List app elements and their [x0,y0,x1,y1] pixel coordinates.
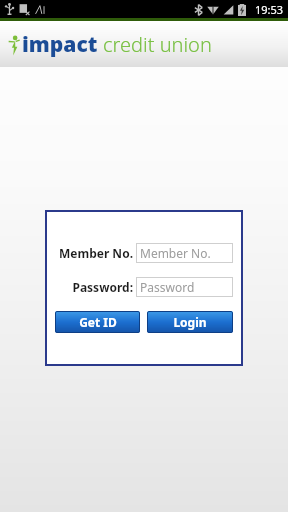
staticText: Member No. [140,245,211,261]
button[interactable]: Get ID [55,311,140,333]
staticText: 19:53 [255,2,284,17]
staticText: impact [22,30,98,59]
button[interactable]: Login [147,311,233,333]
staticText: Get ID [79,314,117,330]
staticText: credit union [103,31,212,58]
staticText: Member No. [58,245,133,261]
staticText: Login [173,314,207,330]
staticText: Password [140,279,195,295]
button[interactable]: Member No. [136,243,233,263]
button[interactable]: Password [136,277,233,297]
staticText: Password: [72,279,133,295]
